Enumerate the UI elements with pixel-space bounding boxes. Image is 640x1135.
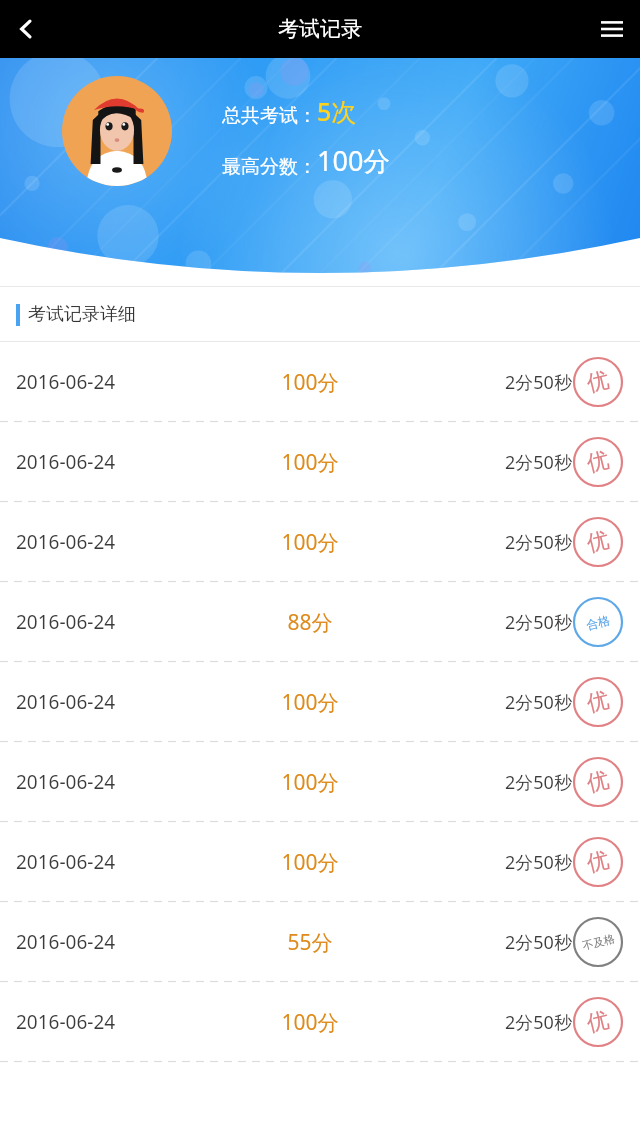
staticText: 100分 (212, 768, 408, 797)
staticText: 优 (584, 766, 612, 798)
staticText: 总共考试： (222, 104, 317, 128)
staticText: 2016-06-24 (16, 369, 212, 395)
staticText: 2016-06-24 (16, 929, 212, 955)
button[interactable]: 2016-06-24 (0, 822, 640, 902)
staticText: 优 (584, 1006, 612, 1038)
staticText: 合格 (584, 612, 611, 633)
staticText: 2分50秒 (505, 450, 572, 475)
button[interactable]: Menu (590, 7, 634, 51)
button[interactable]: Back (4, 7, 48, 51)
staticText: 100分 (212, 448, 408, 477)
button[interactable]: 2016-06-24 (0, 982, 640, 1062)
staticText: 2分50秒 (505, 850, 572, 875)
button[interactable]: 2016-06-24 (0, 742, 640, 822)
button[interactable]: 2016-06-24 (0, 662, 640, 742)
staticText: 2分50秒 (505, 370, 572, 395)
staticText: 2016-06-24 (16, 529, 212, 555)
staticText: 2016-06-24 (16, 609, 212, 635)
staticText: 考试记录 (278, 16, 362, 42)
staticText: 优 (584, 366, 612, 398)
button[interactable]: 2016-06-24 (0, 902, 640, 982)
staticText: 88分 (212, 608, 408, 637)
staticText: 5次 (317, 94, 357, 128)
button[interactable]: 2016-06-24 (0, 422, 640, 502)
staticText: 2分50秒 (505, 690, 572, 715)
button[interactable]: 2016-06-24 (0, 582, 640, 662)
staticText: 2016-06-24 (16, 689, 212, 715)
staticText: 2分50秒 (505, 610, 572, 635)
staticText: 考试记录详细 (28, 303, 136, 326)
staticText: 2分50秒 (505, 530, 572, 555)
staticText: 2016-06-24 (16, 849, 212, 875)
staticText: 不及格 (581, 931, 616, 953)
staticText: 55分 (212, 928, 408, 957)
staticText: 2分50秒 (505, 1010, 572, 1035)
staticText: 优 (584, 686, 612, 718)
staticText: 优 (584, 846, 612, 878)
staticText: 100分 (212, 848, 408, 877)
staticText: 100分 (212, 528, 408, 557)
staticText: 优 (584, 446, 612, 478)
button[interactable]: 2016-06-24 (0, 342, 640, 422)
staticText: 100分 (212, 368, 408, 397)
staticText: 2016-06-24 (16, 1009, 212, 1035)
staticText: 2分50秒 (505, 770, 572, 795)
button[interactable]: 2016-06-24 (0, 502, 640, 582)
staticText: 2016-06-24 (16, 449, 212, 475)
staticText: 100分 (317, 142, 391, 179)
staticText: 优 (584, 526, 612, 558)
staticText: 100分 (212, 688, 408, 717)
staticText: 100分 (212, 1008, 408, 1037)
staticText: 2016-06-24 (16, 769, 212, 795)
staticText: 2分50秒 (505, 930, 572, 955)
staticText: 最高分数： (222, 155, 317, 179)
